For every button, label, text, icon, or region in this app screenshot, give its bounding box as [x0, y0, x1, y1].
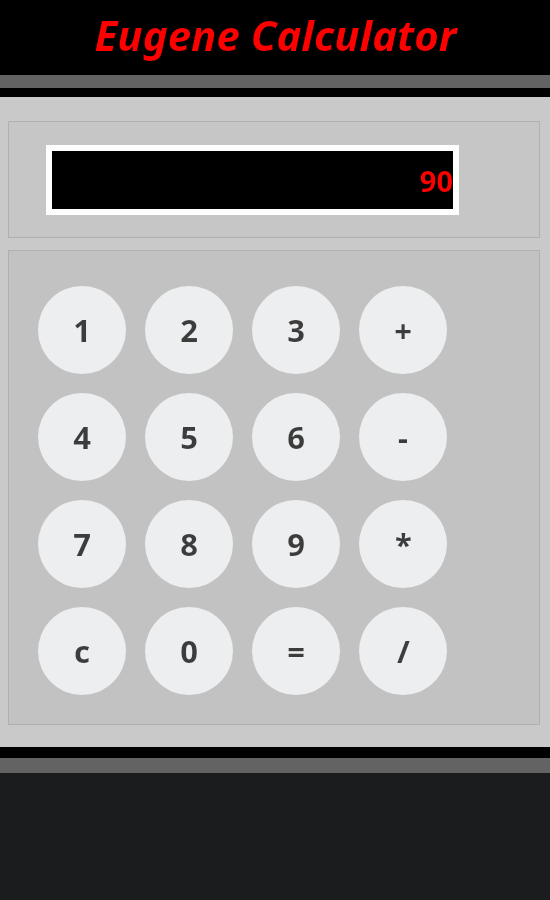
button[interactable]: 5: [145, 393, 233, 481]
staticText: 8: [180, 523, 198, 565]
button[interactable]: 9: [252, 500, 340, 588]
button[interactable]: =: [252, 607, 340, 695]
button[interactable]: c: [38, 607, 126, 695]
button[interactable]: +: [359, 286, 447, 374]
staticText: 3: [287, 309, 305, 351]
staticText: 2: [180, 309, 198, 351]
staticText: 4: [73, 416, 91, 458]
staticText: =: [287, 630, 305, 672]
staticText: Eugene Calculator: [94, 6, 457, 63]
staticText: +: [394, 309, 412, 351]
button[interactable]: -: [359, 393, 447, 481]
staticText: 5: [180, 416, 198, 458]
staticText: -: [398, 416, 408, 458]
button[interactable]: 90: [52, 151, 453, 209]
staticText: 90: [419, 161, 453, 200]
staticText: *: [395, 523, 412, 565]
staticText: 1: [73, 309, 91, 351]
button[interactable]: 1: [38, 286, 126, 374]
button[interactable]: 8: [145, 500, 233, 588]
button[interactable]: 4: [38, 393, 126, 481]
staticText: c: [74, 630, 90, 672]
staticText: 9: [287, 523, 305, 565]
button[interactable]: *: [359, 500, 447, 588]
button[interactable]: 3: [252, 286, 340, 374]
button[interactable]: 0: [145, 607, 233, 695]
staticText: 6: [287, 416, 305, 458]
button[interactable]: 6: [252, 393, 340, 481]
button[interactable]: 7: [38, 500, 126, 588]
staticText: 7: [73, 523, 91, 565]
staticText: 0: [180, 630, 198, 672]
button[interactable]: 2: [145, 286, 233, 374]
staticText: /: [397, 630, 410, 672]
button[interactable]: /: [359, 607, 447, 695]
